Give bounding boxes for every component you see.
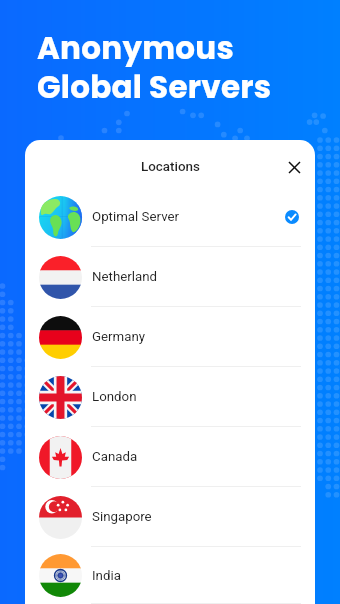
button[interactable]: Germany <box>25 307 315 367</box>
staticText: Canada <box>92 449 138 465</box>
staticText: Optimal Server <box>92 209 180 225</box>
button[interactable]: Close <box>281 154 307 180</box>
button[interactable]: Singapore <box>25 487 315 547</box>
staticText: Anonymous Global Servers <box>37 26 272 109</box>
button[interactable]: Optimal Server <box>25 187 315 247</box>
staticText: Netherland <box>92 269 158 285</box>
button[interactable]: Canada <box>25 427 315 487</box>
button[interactable]: India <box>25 547 315 604</box>
button[interactable]: London <box>25 367 315 427</box>
staticText: India <box>92 568 121 584</box>
staticText: Singapore <box>92 509 152 525</box>
staticText: London <box>92 389 137 405</box>
staticText: Locations <box>141 159 200 175</box>
button[interactable]: Netherland <box>25 247 315 307</box>
staticText: Germany <box>92 329 146 345</box>
